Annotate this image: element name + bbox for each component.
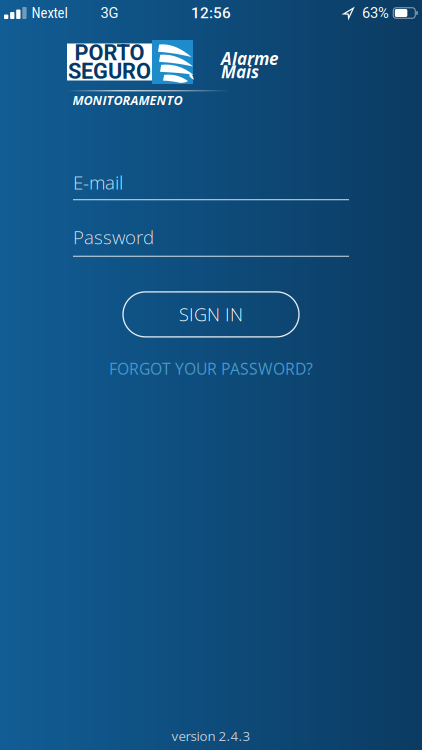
staticText: Password [73,224,154,250]
staticText: Nextel [32,4,68,22]
button[interactable]: Password [73,224,349,257]
staticText: Alarme [221,47,279,70]
staticText: FORGOT YOUR PASSWORD? [109,358,313,379]
staticText: 12:56 [191,4,231,22]
button[interactable]: E-mail [73,170,349,200]
staticText: E-mail [73,170,123,195]
staticText: 3G [101,4,119,22]
staticText: MONITORAMENTO [72,91,182,109]
staticText: PORTO [74,40,144,65]
staticText: SIGN IN [179,302,243,327]
staticText: 63% [362,4,389,22]
staticText: Mais [221,60,259,83]
staticText: SEGURO [68,58,151,84]
staticText: version 2.4.3 [171,727,250,745]
button[interactable]: FORGOT YOUR PASSWORD? [109,358,313,379]
button[interactable]: SIGN IN [123,292,299,337]
